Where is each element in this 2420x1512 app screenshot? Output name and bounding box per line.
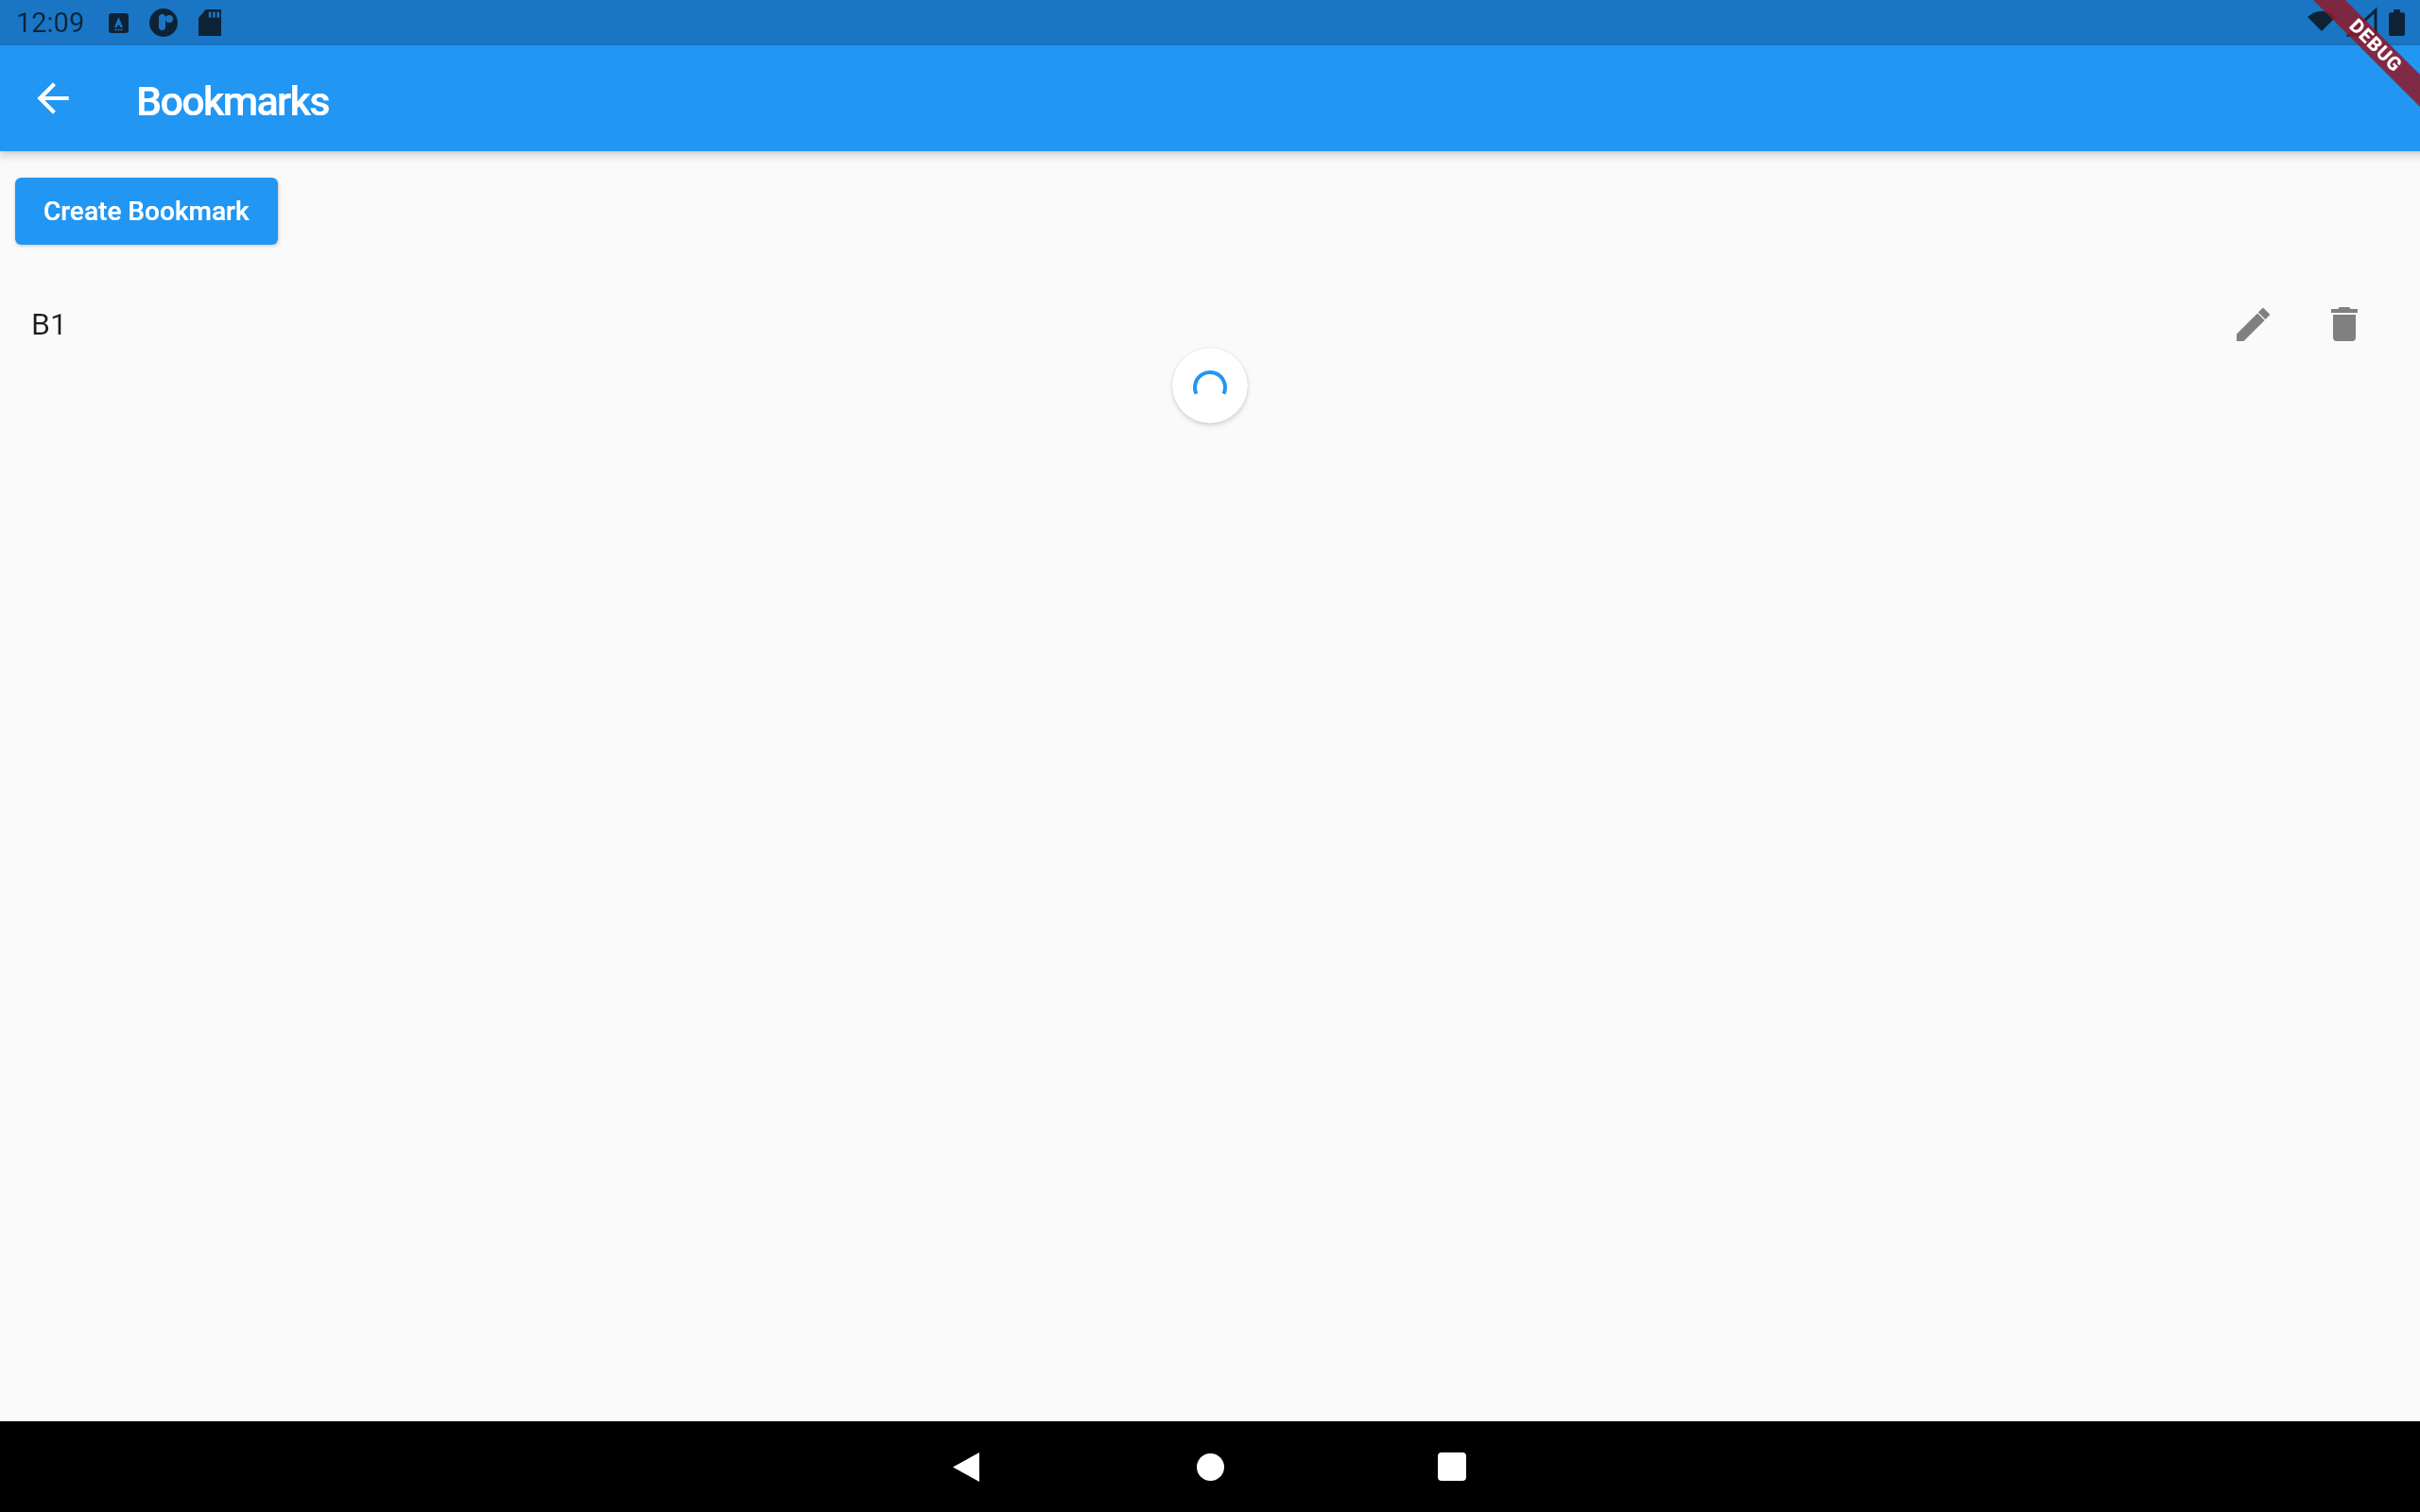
button[interactable]: Create Bookmark bbox=[15, 178, 278, 245]
button[interactable]: B1 bbox=[0, 286, 2420, 362]
button[interactable]: Home bbox=[1165, 1421, 1255, 1512]
staticText: B1 bbox=[31, 306, 67, 342]
button[interactable]: Back bbox=[29, 75, 77, 122]
button[interactable]: Edit bbox=[2208, 286, 2299, 362]
button[interactable]: Delete bbox=[2299, 286, 2390, 362]
button[interactable]: Back bbox=[921, 1421, 1011, 1512]
staticText: Bookmarks bbox=[136, 77, 329, 125]
button[interactable]: Recents bbox=[1407, 1421, 1497, 1512]
staticText: Create Bookmark bbox=[43, 196, 250, 227]
staticText: 12:09 bbox=[16, 7, 85, 39]
staticText: DEBUG bbox=[2346, 14, 2407, 76]
